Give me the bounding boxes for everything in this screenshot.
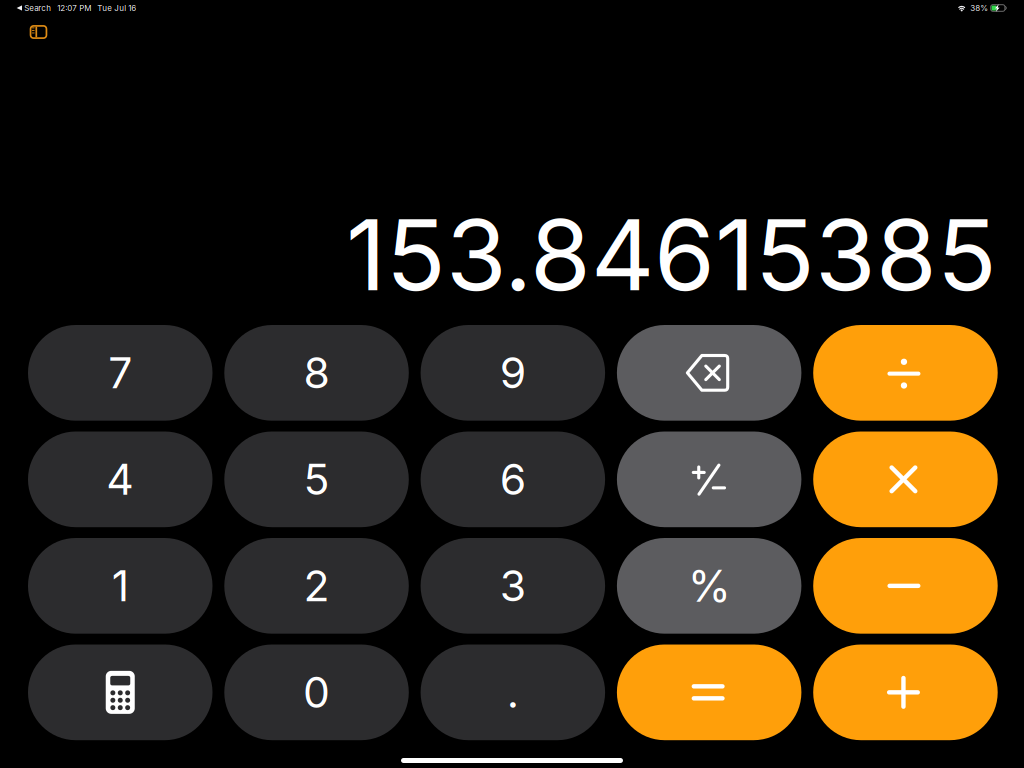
staticText: 3	[500, 560, 526, 612]
button[interactable]: .	[421, 644, 605, 740]
staticText: 9	[500, 347, 526, 399]
staticText: 2	[304, 560, 330, 612]
button[interactable]: 3	[421, 538, 605, 634]
staticText: 6	[500, 453, 526, 505]
button[interactable]: 1	[28, 538, 212, 634]
staticText: 7	[108, 347, 132, 399]
button[interactable]: Divide	[813, 325, 998, 421]
staticText: .	[507, 666, 519, 718]
button[interactable]: Add	[813, 644, 998, 740]
staticText: 1	[112, 560, 129, 612]
button[interactable]: 5	[224, 431, 409, 527]
staticText: 38%	[966, 3, 990, 13]
button[interactable]: Show Sidebar	[16, 14, 60, 50]
button[interactable]: Percent	[617, 538, 801, 634]
button[interactable]: 6	[421, 431, 605, 527]
staticText: 5	[304, 453, 330, 505]
button[interactable]: Delete	[617, 325, 801, 421]
button[interactable]: Equals	[617, 644, 801, 740]
button[interactable]: 2	[224, 538, 409, 634]
staticText: 4	[106, 453, 134, 505]
button[interactable]: 7	[28, 325, 212, 421]
staticText: 8	[304, 347, 330, 399]
button[interactable]: 8	[224, 325, 409, 421]
staticText: 0	[303, 666, 330, 718]
button[interactable]: 0	[224, 644, 409, 740]
button[interactable]: Plus Minus	[617, 431, 801, 527]
staticText: %	[688, 559, 731, 612]
button[interactable]: Subtract	[813, 538, 998, 634]
button[interactable]: 9	[421, 325, 605, 421]
button[interactable]: Multiply	[813, 431, 998, 527]
staticText: 153.84615385	[346, 195, 997, 314]
button[interactable]: Calculator	[28, 644, 212, 740]
button[interactable]: 4	[28, 431, 212, 527]
staticText: 12:07 PM	[51, 3, 91, 13]
staticText: Tue Jul 16	[91, 3, 136, 13]
staticText: Search	[22, 3, 51, 13]
